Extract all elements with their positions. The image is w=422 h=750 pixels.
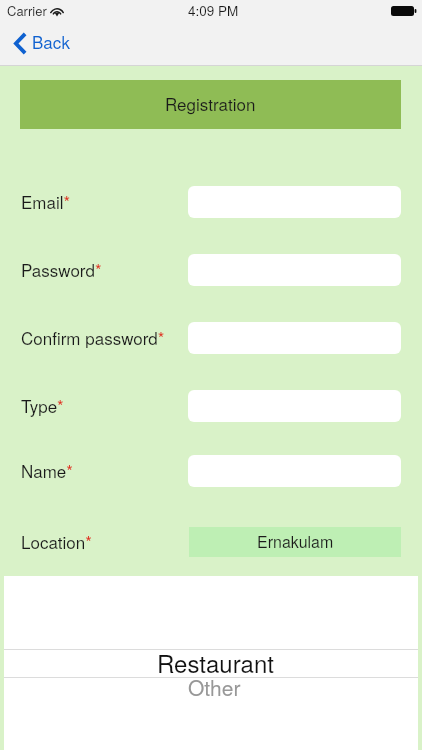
button[interactable] xyxy=(188,254,401,286)
staticText: Password* xyxy=(21,257,102,281)
staticText: 4:09 PM xyxy=(188,1,239,20)
button[interactable]: Registration xyxy=(20,80,401,129)
button[interactable]: Ernakulam xyxy=(189,527,401,557)
other: Wi-Fi signal xyxy=(50,5,64,16)
staticText: Restaurant xyxy=(157,645,274,679)
button[interactable] xyxy=(188,455,401,487)
staticText: Carrier xyxy=(7,1,47,20)
staticText: Ernakulam xyxy=(257,530,334,553)
staticText: Email* xyxy=(21,189,71,213)
staticText: Name* xyxy=(21,458,73,482)
staticText: Back xyxy=(32,29,70,53)
button[interactable] xyxy=(188,390,401,422)
button[interactable]: Other xyxy=(4,678,418,708)
button[interactable]: Back xyxy=(8,26,80,64)
staticText: Type* xyxy=(21,393,64,417)
other: Battery full xyxy=(391,6,417,16)
button[interactable] xyxy=(188,186,401,218)
staticText: Other xyxy=(188,672,241,702)
button[interactable] xyxy=(188,322,401,354)
staticText: Confirm password* xyxy=(21,325,165,349)
staticText: Location* xyxy=(21,529,92,553)
button[interactable]: Restaurant xyxy=(4,650,418,677)
staticText: Registration xyxy=(165,91,256,115)
